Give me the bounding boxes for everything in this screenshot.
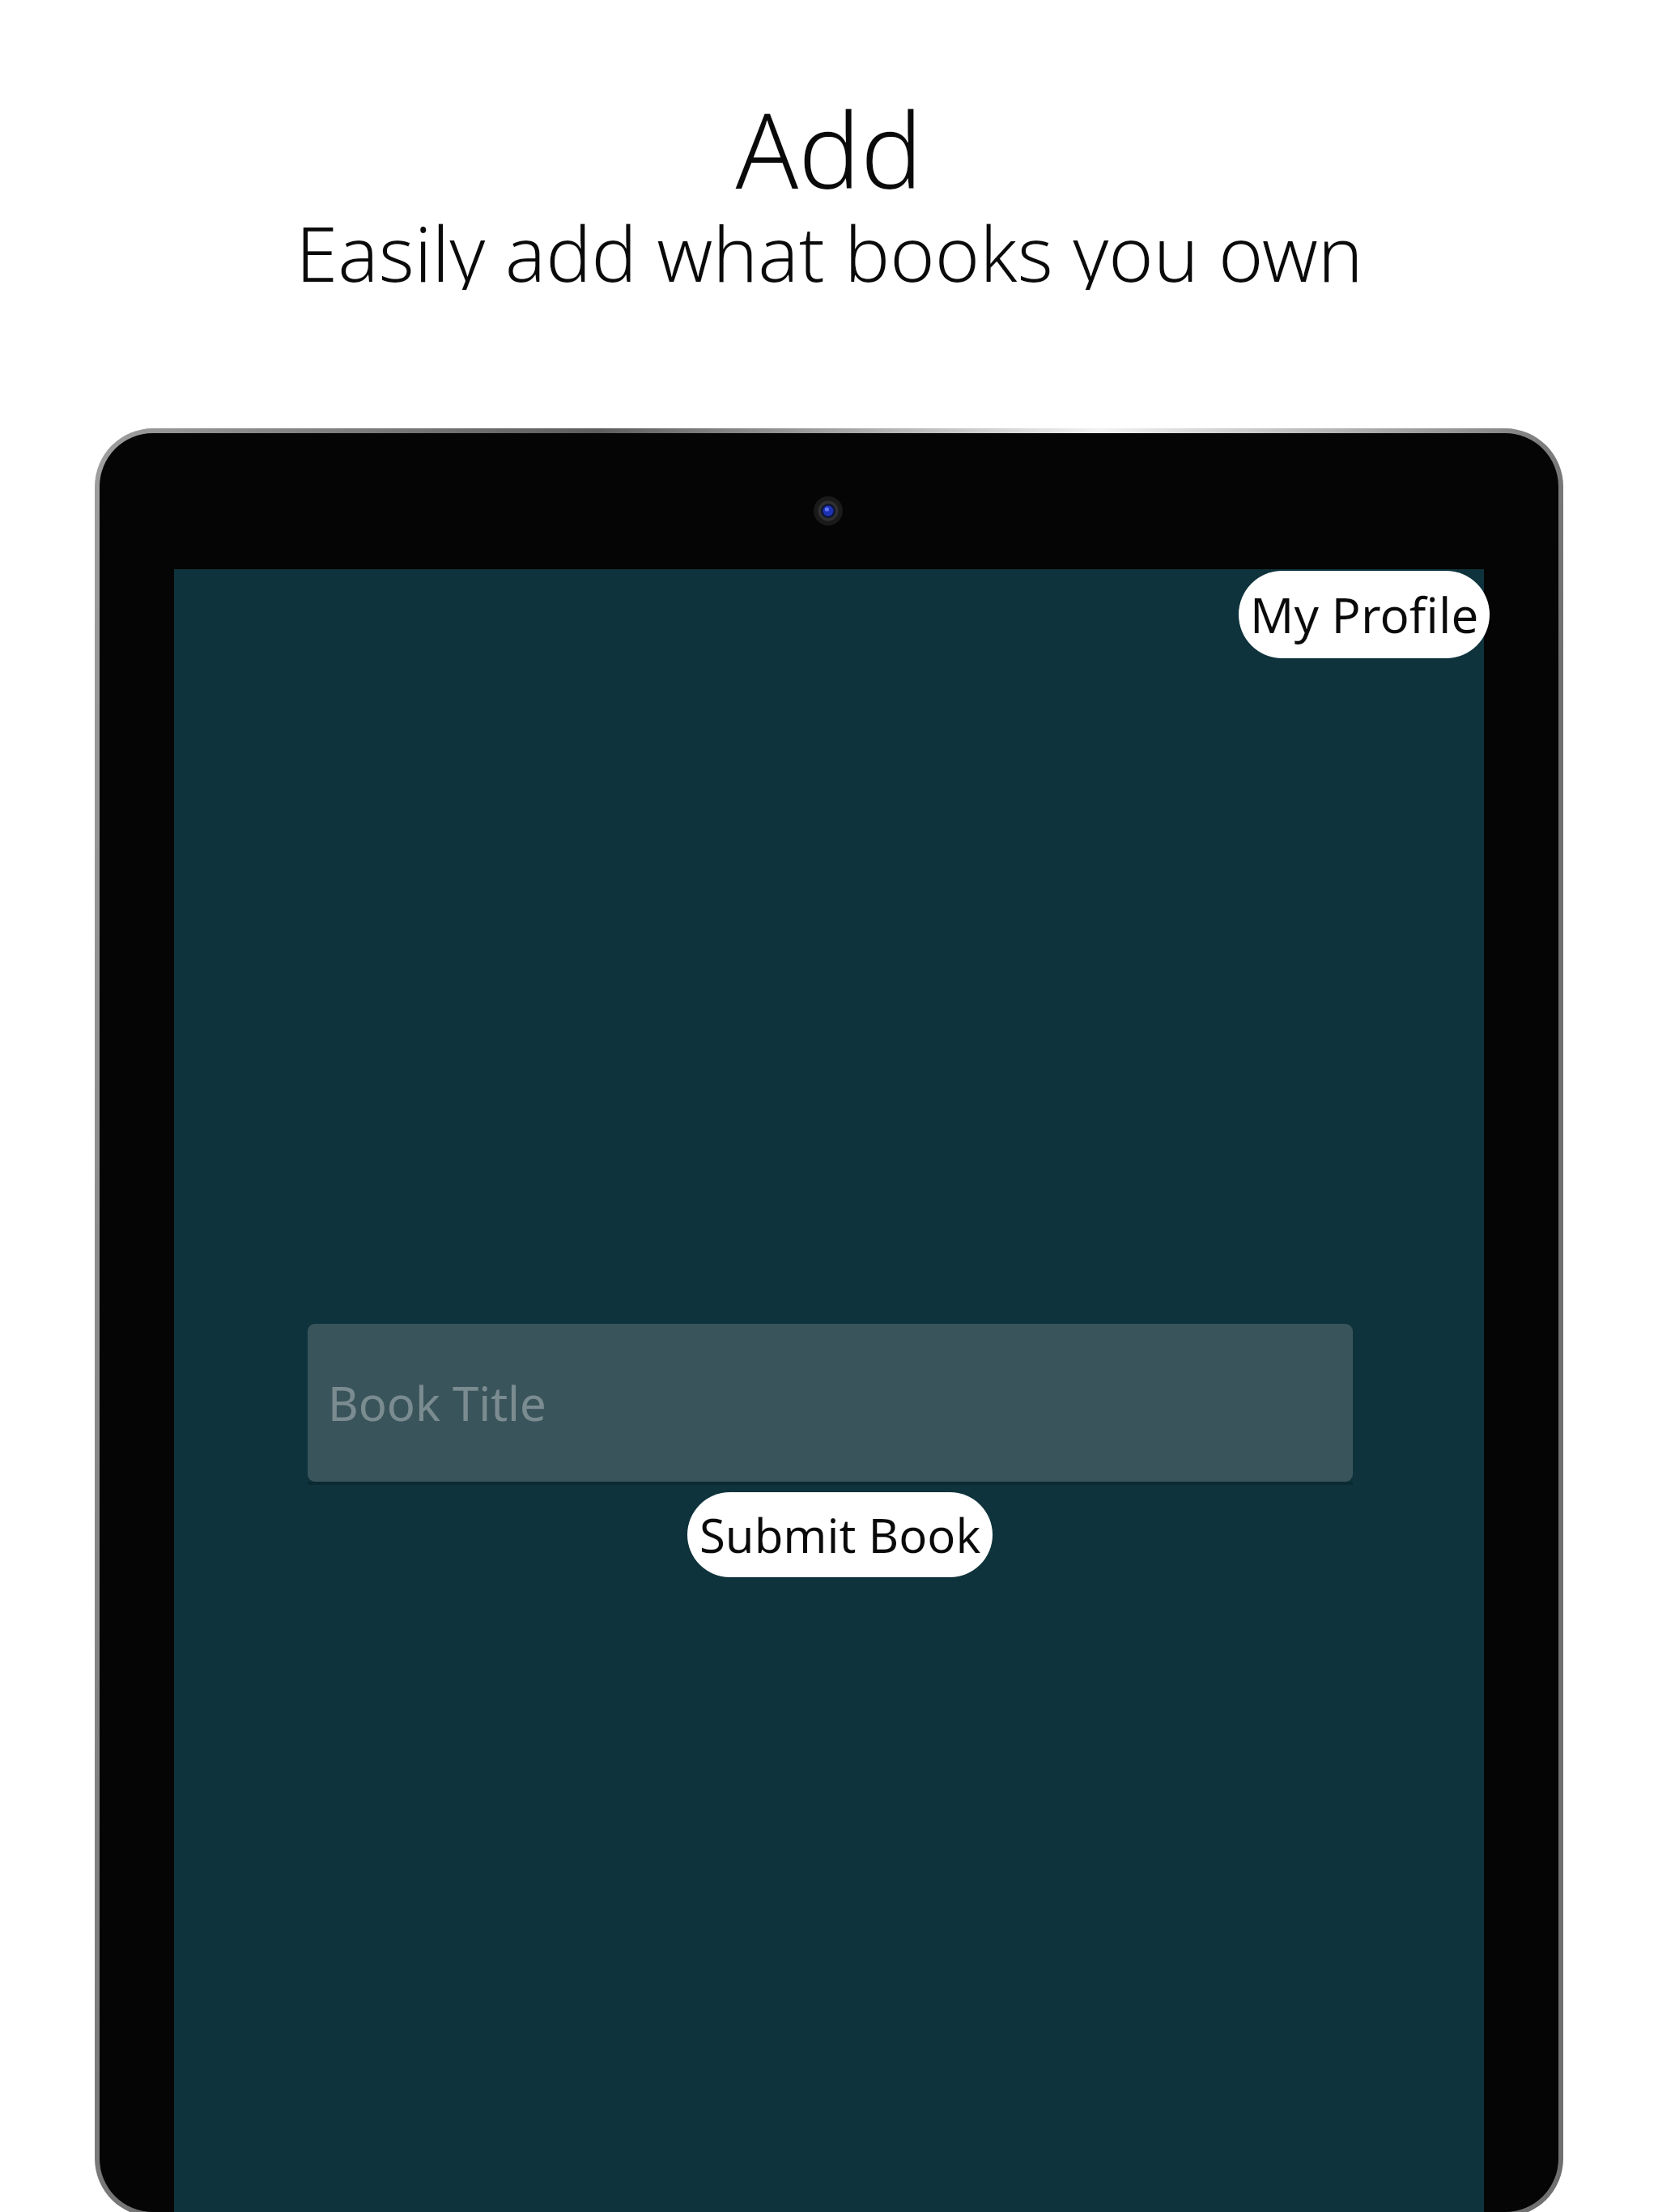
staticText: Book Title (328, 1371, 546, 1435)
button[interactable]: My Profile (1239, 571, 1490, 658)
button[interactable]: Book Title input (308, 1324, 1353, 1482)
button[interactable]: Submit Book (687, 1492, 993, 1577)
staticText: Easily add what books you own (295, 201, 1363, 290)
staticText: Add (735, 78, 923, 191)
staticText: My Profile (1250, 581, 1479, 648)
staticText: Submit Book (699, 1503, 981, 1567)
